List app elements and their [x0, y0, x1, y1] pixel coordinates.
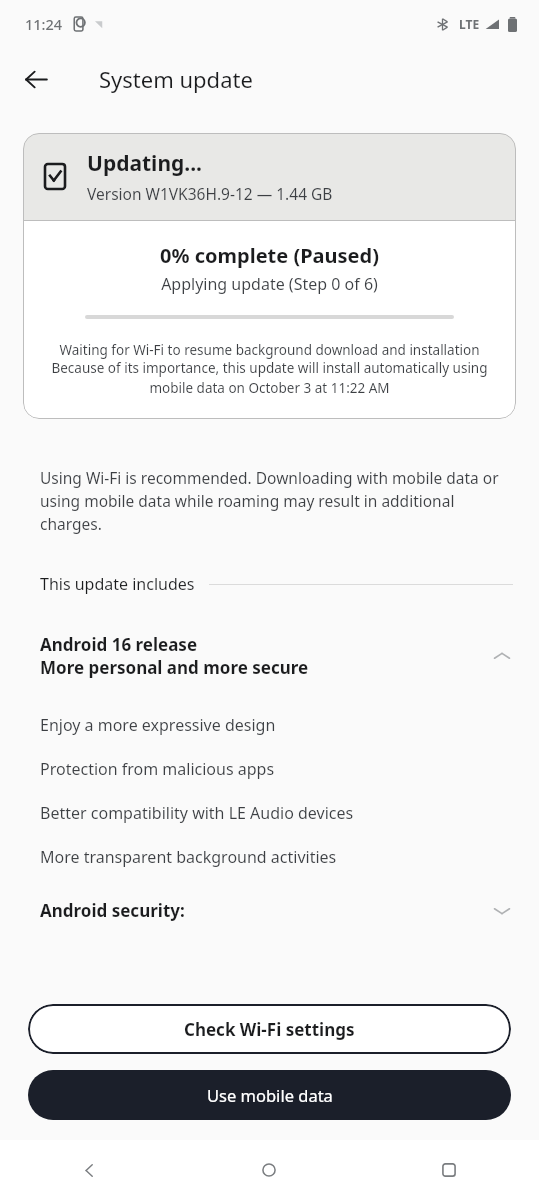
button[interactable]: Check Wi-Fi settings: [28, 1004, 511, 1054]
button[interactable]: Back: [0, 1140, 179, 1200]
staticText: LTE: [459, 16, 480, 32]
staticText: Check Wi-Fi settings: [184, 1018, 355, 1041]
staticText: Protection from malicious apps: [40, 758, 275, 780]
staticText: Because of its importance, this update w…: [41, 359, 498, 397]
staticText: 11:24: [25, 14, 63, 34]
staticText: Waiting for Wi-Fi to resume background d…: [59, 341, 480, 359]
staticText: Version W1VK36H.9-12 — 1.44 GB: [87, 183, 333, 204]
button[interactable]: Android security:: [0, 895, 539, 926]
other: Collapse: [491, 645, 513, 667]
staticText: More personal and more secure: [40, 656, 309, 679]
button[interactable]: Enjoy a more expressive design: [0, 703, 539, 747]
staticText: More transparent background activities: [40, 846, 337, 868]
staticText: Enjoy a more expressive design: [40, 714, 276, 736]
button[interactable]: Use mobile data: [28, 1070, 511, 1120]
staticText: Applying update (Step 0 of 6): [161, 273, 378, 295]
other: Expand: [491, 900, 513, 922]
staticText: Using Wi-Fi is recommended. Downloading …: [40, 467, 499, 535]
button[interactable]: More transparent background activities: [0, 835, 539, 879]
staticText: This update includes: [40, 573, 195, 595]
staticText: Android 16 release: [40, 633, 198, 656]
button[interactable]: Back: [12, 55, 60, 103]
staticText: Better compatibility with LE Audio devic…: [40, 802, 354, 824]
button[interactable]: Better compatibility with LE Audio devic…: [0, 791, 539, 835]
button[interactable]: Recents: [359, 1140, 539, 1200]
button[interactable]: Android 16 release: [0, 629, 539, 683]
button[interactable]: Updating...: [23, 133, 516, 419]
button[interactable]: Protection from malicious apps: [0, 747, 539, 791]
staticText: System update: [99, 64, 253, 94]
staticText: Android security:: [40, 899, 185, 922]
button[interactable]: Home: [179, 1140, 359, 1200]
staticText: 0% complete (Paused): [160, 242, 379, 269]
staticText: Updating...: [87, 149, 203, 178]
staticText: Use mobile data: [207, 1084, 333, 1106]
